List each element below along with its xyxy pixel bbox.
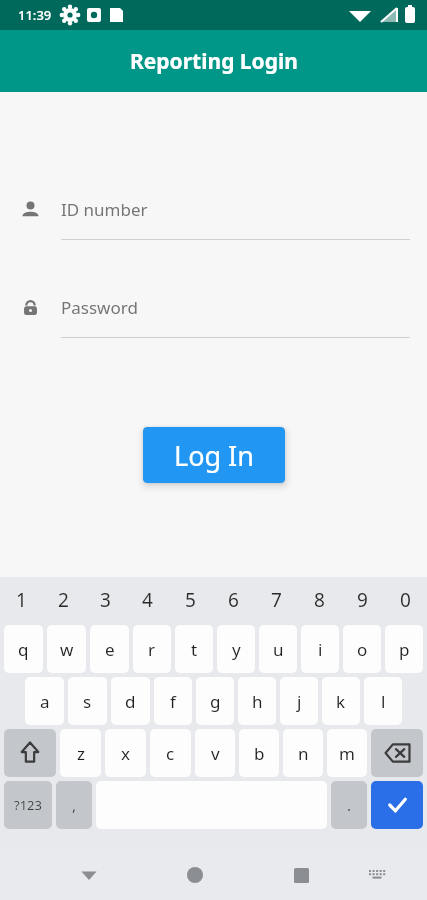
staticText: 6: [228, 587, 239, 613]
button[interactable]: g: [196, 677, 234, 725]
button[interactable]: v: [195, 729, 235, 777]
button[interactable]: Recents: [278, 852, 324, 898]
button[interactable]: a: [25, 677, 64, 725]
button[interactable]: 4: [126, 577, 169, 623]
staticText: q: [18, 638, 29, 661]
button[interactable]: 7: [255, 577, 298, 623]
staticText: m: [339, 742, 355, 765]
button[interactable]: c: [150, 729, 191, 777]
button[interactable]: Enter: [371, 781, 423, 829]
staticText: x: [121, 742, 130, 765]
button[interactable]: f: [154, 677, 192, 725]
staticText: e: [105, 638, 115, 661]
staticText: p: [399, 638, 410, 661]
staticText: u: [273, 638, 284, 661]
staticText: t: [191, 638, 198, 661]
button[interactable]: Keyboard: [357, 855, 397, 895]
staticText: 5: [185, 587, 196, 613]
button[interactable]: n: [283, 729, 323, 777]
staticText: r: [148, 638, 156, 661]
button[interactable]: m: [327, 729, 367, 777]
button[interactable]: o: [343, 625, 381, 673]
staticText: ,: [72, 795, 77, 815]
button[interactable]: l: [364, 677, 402, 725]
button[interactable]: j: [280, 677, 318, 725]
button[interactable]: s: [68, 677, 107, 725]
button[interactable]: q: [4, 625, 43, 673]
staticText: j: [297, 690, 302, 713]
button[interactable]: Shift: [4, 729, 56, 777]
button[interactable]: Home: [172, 852, 218, 898]
staticText: i: [318, 638, 323, 661]
staticText: z: [77, 742, 85, 765]
button[interactable]: x: [105, 729, 146, 777]
staticText: n: [298, 742, 309, 765]
button[interactable]: h: [238, 677, 276, 725]
button[interactable]: Backspace: [371, 729, 423, 777]
staticText: 7: [271, 587, 282, 613]
staticText: o: [357, 638, 368, 661]
button[interactable]: w: [47, 625, 86, 673]
staticText: Log In: [174, 437, 254, 474]
button[interactable]: p: [385, 625, 423, 673]
button[interactable]: b: [239, 729, 279, 777]
staticText: 4: [142, 587, 153, 613]
staticText: .: [347, 795, 352, 815]
button[interactable]: 1: [0, 577, 42, 623]
staticText: 1: [16, 587, 27, 613]
button[interactable]: z: [60, 729, 101, 777]
staticText: c: [166, 742, 175, 765]
button[interactable]: 9: [341, 577, 384, 623]
button[interactable]: y: [217, 625, 255, 673]
button[interactable]: t: [175, 625, 213, 673]
button[interactable]: 8: [298, 577, 341, 623]
staticText: w: [60, 638, 74, 661]
staticText: l: [381, 690, 386, 713]
staticText: h: [252, 690, 263, 713]
button[interactable]: u: [259, 625, 297, 673]
button[interactable]: ,: [56, 781, 92, 829]
button[interactable]: 0: [384, 577, 427, 623]
button[interactable]: e: [90, 625, 129, 673]
staticText: a: [40, 690, 50, 713]
button[interactable]: ?123: [4, 781, 52, 829]
button[interactable]: 2: [42, 577, 84, 623]
staticText: d: [125, 690, 136, 713]
button[interactable]: 3: [84, 577, 126, 623]
button[interactable]: .: [331, 781, 367, 829]
button[interactable]: r: [133, 625, 171, 673]
staticText: 8: [314, 587, 325, 613]
staticText: ID number: [61, 198, 148, 221]
button[interactable]: i: [301, 625, 339, 673]
staticText: 11:39: [18, 6, 52, 24]
staticText: g: [210, 690, 221, 713]
staticText: ?123: [14, 796, 42, 814]
staticText: v: [211, 742, 220, 765]
staticText: f: [170, 690, 176, 713]
staticText: b: [254, 742, 265, 765]
button[interactable]: 6: [212, 577, 255, 623]
staticText: 2: [58, 587, 69, 613]
staticText: y: [232, 638, 241, 661]
button[interactable]: Back: [66, 852, 112, 898]
staticText: 9: [357, 587, 368, 613]
staticText: Password: [61, 296, 138, 319]
button[interactable]: d: [111, 677, 150, 725]
button[interactable]: k: [322, 677, 360, 725]
staticText: 0: [400, 587, 411, 613]
staticText: s: [83, 690, 92, 713]
staticText: Reporting Login: [130, 47, 298, 76]
button[interactable]: 5: [169, 577, 212, 623]
staticText: k: [336, 690, 346, 713]
button[interactable]: Log In: [143, 427, 285, 483]
staticText: 3: [100, 587, 111, 613]
